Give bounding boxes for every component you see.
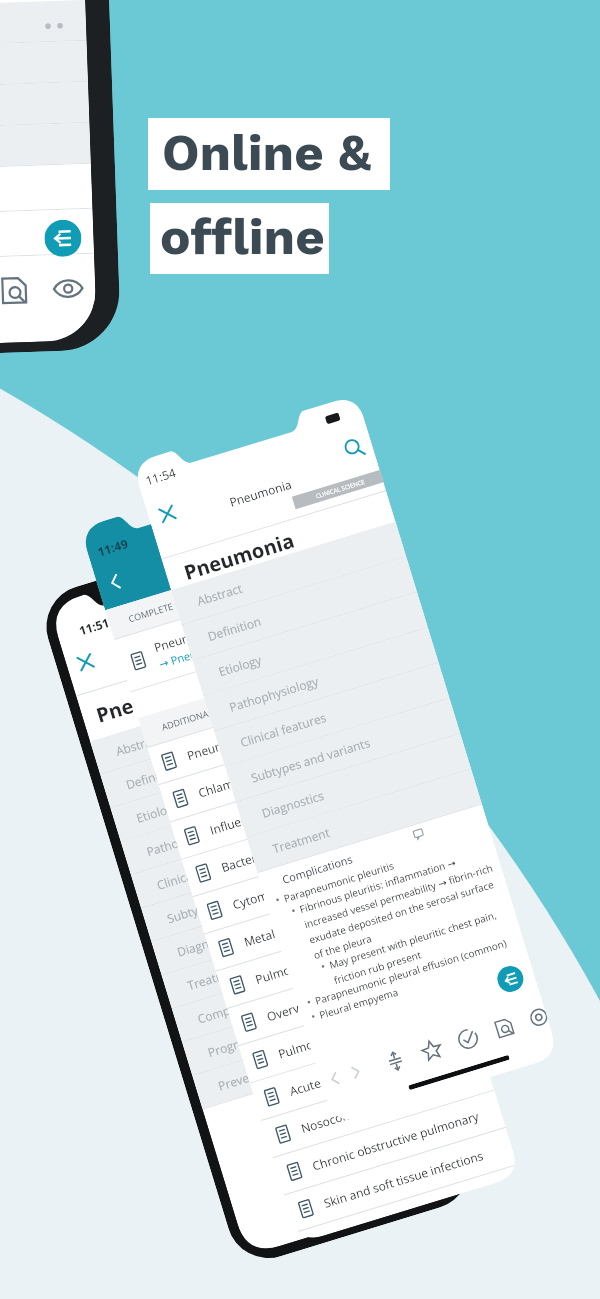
staticText: Parapneumonic pleural effusion (common) <box>313 936 509 1008</box>
staticText: Treatment <box>271 824 332 856</box>
button[interactable]: Cytomegaloviru <box>200 829 426 931</box>
staticText: Pathophysiology <box>227 672 321 715</box>
button[interactable]: Search document <box>0 273 32 308</box>
button[interactable]: Abstract <box>111 674 320 767</box>
button[interactable]: Pulmonary edem <box>246 978 471 1080</box>
button[interactable]: Pulmonary tub <box>223 904 449 1006</box>
staticText: → Pneumonia <box>157 636 229 671</box>
staticText: Diagnostics <box>175 926 241 960</box>
staticText: Pulmonary edem <box>276 1018 373 1062</box>
button[interactable]: Subtypes and variants <box>162 841 371 935</box>
staticText: Pleural empyema <box>318 985 400 1022</box>
staticText: Abstract <box>114 730 163 759</box>
button[interactable]: Chronic obstructive pulmonary disease <box>280 1090 506 1192</box>
button[interactable]: Metal fume fe <box>212 867 437 968</box>
staticText: Clinical features <box>238 708 329 750</box>
button[interactable]: Preview <box>51 271 86 306</box>
button[interactable]: Back <box>100 567 130 597</box>
staticText: Complications <box>280 851 354 887</box>
button[interactable]: Pathophysiology <box>224 628 439 724</box>
staticText: Clinical features <box>155 851 245 893</box>
button[interactable]: Influenza <box>178 755 403 856</box>
staticText: Pneumonia <box>93 669 211 729</box>
button[interactable]: Acute respirato <box>257 1016 483 1118</box>
staticText: Pneumonia <box>180 526 298 586</box>
button[interactable]: Pneumonia <box>155 680 380 782</box>
staticText: Etiology <box>216 651 263 679</box>
staticText: 11:51 <box>77 614 111 638</box>
staticText: Pneumonia <box>185 729 252 763</box>
button[interactable]: Search in page <box>491 1014 518 1042</box>
staticText: COMPLETE MAIN ARTICLE <box>127 581 234 624</box>
button[interactable]: Complications <box>193 942 402 1035</box>
staticText: Fibrinous pleuritis: inflammation → incr… <box>298 843 510 961</box>
staticText: Subtypes and variants <box>165 875 288 926</box>
button[interactable]: Subtypes and variants <box>246 698 460 795</box>
button[interactable]: Treatment <box>183 908 392 1002</box>
button[interactable]: Next <box>343 1060 368 1085</box>
staticText: Etiology <box>134 798 181 826</box>
button[interactable]: Compare <box>44 219 82 257</box>
button[interactable]: Chlamydia pne <box>166 717 392 819</box>
button[interactable]: Expand sections <box>382 1047 409 1075</box>
button[interactable]: Treatment <box>268 769 482 866</box>
staticText: offline <box>160 207 325 267</box>
staticText: Online & <box>162 123 372 183</box>
button[interactable]: Clinical features <box>152 808 361 901</box>
staticText: CLINICAL SCIENCE <box>315 478 366 501</box>
button[interactable]: Nosocomial infe <box>269 1053 494 1155</box>
staticText: Pneumonia <box>227 475 294 510</box>
staticText: Complications <box>195 988 277 1027</box>
staticText: Pathophysiology <box>144 817 238 859</box>
staticText: Skin and soft tissue infections <box>322 1147 485 1211</box>
button[interactable]: Target <box>525 1004 550 1031</box>
staticText: 11:54 <box>143 464 178 488</box>
staticText: Metal fume fe <box>242 912 321 950</box>
button[interactable]: Clinical features <box>235 663 449 760</box>
button[interactable]: Diagnostics <box>172 875 381 968</box>
button[interactable]: Close <box>72 648 99 676</box>
staticText: Nosocomial infe <box>299 1094 391 1136</box>
button[interactable]: Overview of fun <box>235 941 460 1043</box>
staticText: Cytomegaloviru <box>230 871 319 912</box>
button[interactable]: Pathophysiology <box>142 775 351 868</box>
staticText: Bacterial tra <box>219 840 289 875</box>
button[interactable]: Definition <box>203 557 417 654</box>
button[interactable]: Etiology <box>214 592 428 689</box>
staticText: Overview of fun <box>265 983 354 1024</box>
button[interactable]: Etiology <box>131 741 340 834</box>
button[interactable]: Prevention <box>213 1009 422 1102</box>
button[interactable]: Abstract <box>192 521 406 618</box>
staticText: Prevention <box>216 1060 279 1094</box>
staticText: Influenza <box>208 807 262 838</box>
staticText: ADDITIONAL SEARCH RESULTS <box>160 684 286 732</box>
staticText: Chlamydia pne <box>196 761 281 801</box>
staticText: Chronic obstructive pulmonary disease <box>310 1101 502 1173</box>
staticText: Definition <box>124 761 181 792</box>
staticText: Treatment <box>185 961 246 993</box>
button[interactable]: Skin and soft tissue infections <box>292 1128 517 1229</box>
staticText: Diagnostics <box>260 787 326 821</box>
staticText: Subtypes and variants <box>249 734 372 786</box>
button[interactable]: Bacterial tra <box>189 792 414 894</box>
button[interactable]: Prognosis <box>203 975 412 1069</box>
staticText: Abstract <box>195 580 244 609</box>
button[interactable]: Definition <box>121 708 330 801</box>
button[interactable]: Pneumonia <box>122 572 352 689</box>
staticText: Pulmonary tub <box>253 947 337 987</box>
button[interactable]: Previous <box>322 1066 347 1091</box>
staticText: Acute respirato <box>287 1058 374 1099</box>
staticText: 11:49 <box>95 535 130 559</box>
button[interactable]: Close <box>154 500 181 528</box>
staticText: Parapneumonic pleuritis <box>282 858 396 905</box>
staticText: May present with pleuritic chest pain, f… <box>327 903 518 986</box>
button[interactable]: Favourite <box>418 1036 445 1064</box>
button[interactable]: Compare <box>494 963 527 995</box>
staticText: Prognosis <box>206 1029 263 1060</box>
button[interactable]: Mark as learned <box>454 1025 482 1053</box>
button[interactable]: Search <box>341 435 368 462</box>
button[interactable]: Diagnostics <box>257 734 471 830</box>
staticText: Definition <box>206 613 263 644</box>
staticText: Pneumonia <box>152 621 219 655</box>
